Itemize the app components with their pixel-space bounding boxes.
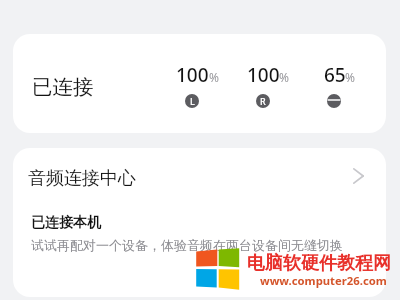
other: Earbud R battery [256, 94, 270, 108]
staticText: % [279, 69, 289, 85]
staticText: 电脑软硬件教程网 [247, 252, 391, 275]
other: Earbud L battery [185, 94, 199, 108]
button[interactable]: 音频连接中心 [13, 148, 386, 208]
staticText: % [345, 69, 355, 85]
staticText: 65 [324, 62, 346, 88]
other: Charging case battery [327, 94, 341, 108]
staticText: 100 [247, 62, 280, 88]
staticText: L [190, 95, 195, 107]
button[interactable]: 已连接 [13, 34, 386, 133]
staticText: 已连接本机 [31, 214, 101, 232]
staticText: www.computer26.com [260, 273, 387, 288]
staticText: 100 [176, 62, 209, 88]
staticText: 音频连接中心 [28, 167, 136, 190]
staticText: R [260, 95, 266, 107]
staticText: 已连接 [32, 74, 94, 100]
staticText: % [209, 69, 219, 85]
staticText: 试试再配对一个设备，体验音频在两台设备间无缝切换 [31, 237, 343, 253]
